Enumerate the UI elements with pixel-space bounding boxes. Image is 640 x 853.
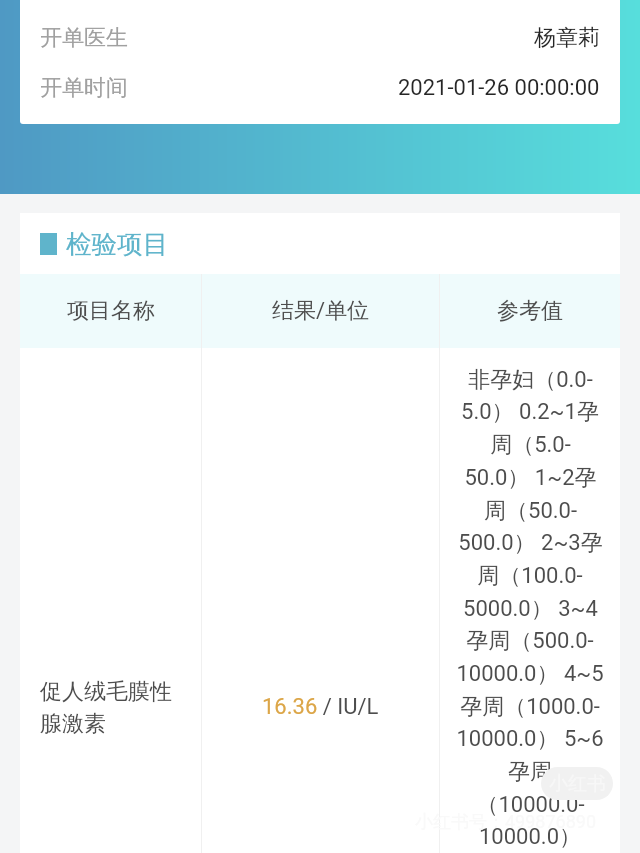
staticText: 腺激素 xyxy=(40,710,106,738)
button[interactable]: 开单医生 xyxy=(20,13,620,63)
staticText: 开单时间 xyxy=(40,74,128,102)
staticText: （10000.0- xyxy=(476,791,585,819)
staticText: 参考值 xyxy=(497,297,563,325)
button[interactable]: 检验项目 xyxy=(20,213,620,274)
staticText: 10000.0） 5~6 xyxy=(456,725,604,753)
staticText: 周（5.0- xyxy=(490,431,571,459)
staticText: 杨章莉 xyxy=(534,24,600,52)
staticText: 500.0） 2~3孕 xyxy=(458,529,603,557)
staticText: 2021-01-26 00:00:00 xyxy=(398,75,600,101)
staticText: 孕周（1000.0- xyxy=(460,693,600,721)
staticText: 结果/单位 xyxy=(272,297,370,325)
staticText: 16.36 / IU/L xyxy=(262,694,379,720)
staticText: 孕周（500.0- xyxy=(466,627,594,655)
button[interactable]: 促人绒毛膜性 xyxy=(20,348,620,853)
staticText: 5000.0） 3~4 xyxy=(463,595,598,623)
staticText: 50.0） 1~2孕 xyxy=(464,464,597,492)
staticText: 小红书号：499876890 xyxy=(415,811,597,834)
staticText: 开单医生 xyxy=(40,24,128,52)
staticText: 孕周 xyxy=(508,758,552,786)
staticText: 10000.0） xyxy=(479,823,581,851)
staticText: 项目名称 xyxy=(67,297,155,325)
staticText: 促人绒毛膜性 xyxy=(40,678,172,706)
staticText: 周（50.0- xyxy=(484,497,577,525)
staticText: 检验项目 xyxy=(66,228,168,260)
staticText: 5.0） 0.2~1孕 xyxy=(461,398,599,426)
button[interactable]: 开单时间 xyxy=(20,63,620,113)
staticText: 周（100.0- xyxy=(477,562,583,590)
staticText: 非孕妇（0.0- xyxy=(468,366,593,394)
staticText: 10000.0） 4~5 xyxy=(456,660,604,688)
